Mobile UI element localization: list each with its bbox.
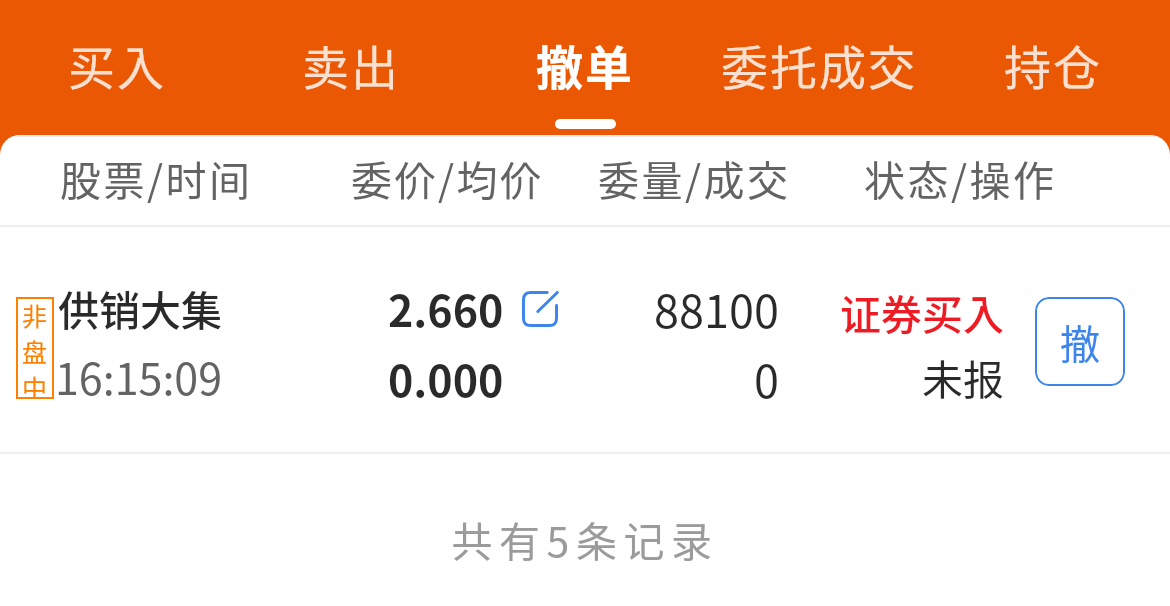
button[interactable]: 卖出 [234, 0, 468, 135]
button[interactable]: 撤单 [468, 0, 702, 135]
staticText: 撤 [1060, 313, 1100, 371]
staticText: 非 [22, 297, 48, 333]
staticText: 0.000 [388, 347, 504, 409]
button[interactable]: Edit order price [522, 291, 558, 327]
staticText: 证券买入 [800, 282, 1004, 341]
button[interactable]: 委托成交 [702, 0, 936, 135]
staticText: 状态/操作 [864, 148, 1057, 207]
staticText: 中 [22, 369, 48, 399]
button[interactable]: 非 [0, 227, 1170, 452]
staticText: 共有5条记录 [0, 509, 1170, 568]
staticText: 委价/均价 [351, 148, 544, 207]
staticText: 撤单 [468, 30, 702, 98]
staticText: 未报 [800, 347, 1004, 406]
staticText: 供销大集 [58, 278, 222, 337]
staticText: 盘 [22, 333, 48, 369]
button[interactable]: 持仓 [936, 0, 1170, 135]
staticText: 持仓 [936, 30, 1170, 98]
staticText: 股票/时间 [60, 148, 253, 207]
staticText: 88100 [576, 276, 779, 341]
staticText: 买入 [0, 30, 234, 98]
staticText: 委量/成交 [598, 148, 791, 207]
staticText: 卖出 [234, 30, 468, 98]
staticText: 2.660 [388, 277, 504, 339]
button[interactable]: 买入 [0, 0, 234, 135]
button[interactable]: 撤 [1035, 297, 1125, 386]
staticText: 16:15:09 [55, 345, 223, 407]
staticText: 委托成交 [702, 30, 936, 98]
staticText: 0 [576, 346, 779, 411]
